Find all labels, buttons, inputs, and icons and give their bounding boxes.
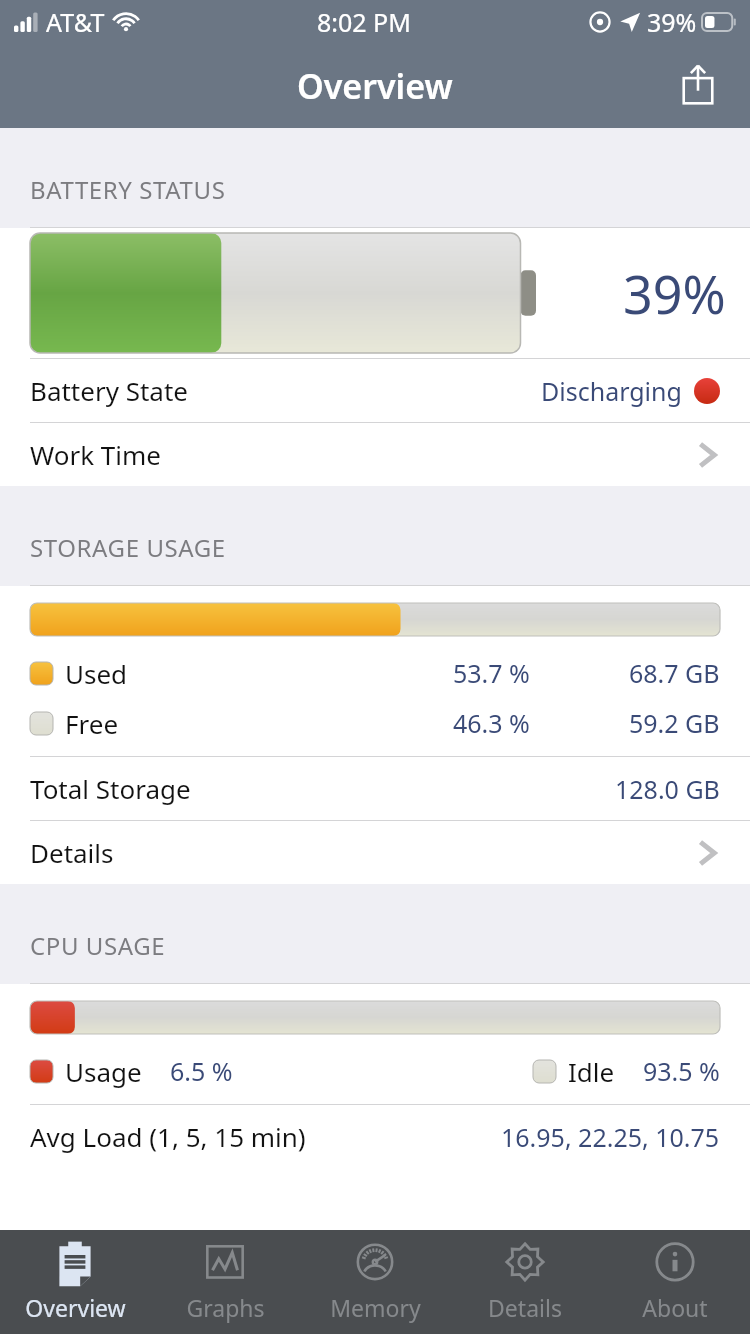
staticText: Battery State [30, 373, 188, 408]
staticText: 8:02 PM [317, 5, 411, 39]
staticText: Overview [25, 1292, 126, 1323]
staticText: 39% [623, 258, 726, 329]
staticText: 16.95, 22.25, 10.75 [501, 1120, 720, 1154]
button[interactable]: Memory [300, 1230, 450, 1334]
button[interactable]: Details [0, 821, 750, 884]
staticText: Graphs [186, 1292, 265, 1323]
button[interactable]: Graphs [150, 1230, 300, 1334]
staticText: Free [65, 706, 119, 741]
staticText: Memory [330, 1292, 421, 1323]
staticText: Total Storage [30, 771, 191, 806]
staticText: Used [65, 656, 128, 691]
staticText: Discharging [541, 374, 682, 408]
button[interactable]: Total Storage [0, 757, 750, 820]
staticText: Overview [297, 63, 453, 109]
staticText: 59.2 GB [629, 706, 720, 740]
staticText: Avg Load (1, 5, 15 min) [30, 1119, 306, 1154]
staticText: 93.5 % [643, 1054, 720, 1088]
staticText: AT&T [46, 5, 105, 39]
staticText: 128.0 GB [615, 772, 720, 806]
button[interactable]: Work Time [0, 423, 750, 486]
staticText: 39% [647, 5, 697, 39]
staticText: 46.3 % [453, 706, 530, 740]
button[interactable]: Overview [0, 1230, 150, 1334]
staticText: Details [30, 835, 114, 870]
staticText: 53.7 % [453, 656, 530, 690]
staticText: CPU USAGE [30, 929, 166, 962]
staticText: 68.7 GB [629, 656, 720, 690]
staticText: 6.5 % [170, 1054, 233, 1088]
staticText: About [642, 1292, 708, 1323]
staticText: Details [488, 1292, 562, 1323]
button[interactable]: Share [670, 56, 726, 112]
button[interactable]: Details [450, 1230, 600, 1334]
button[interactable]: Battery State [0, 359, 750, 422]
button[interactable]: About [600, 1230, 750, 1334]
button[interactable]: Avg Load (1, 5, 15 min) [0, 1105, 750, 1168]
staticText: Idle [568, 1054, 615, 1089]
staticText: Work Time [30, 437, 161, 472]
staticText: Usage [65, 1054, 142, 1089]
staticText: BATTERY STATUS [30, 173, 226, 206]
staticText: STORAGE USAGE [30, 531, 226, 564]
